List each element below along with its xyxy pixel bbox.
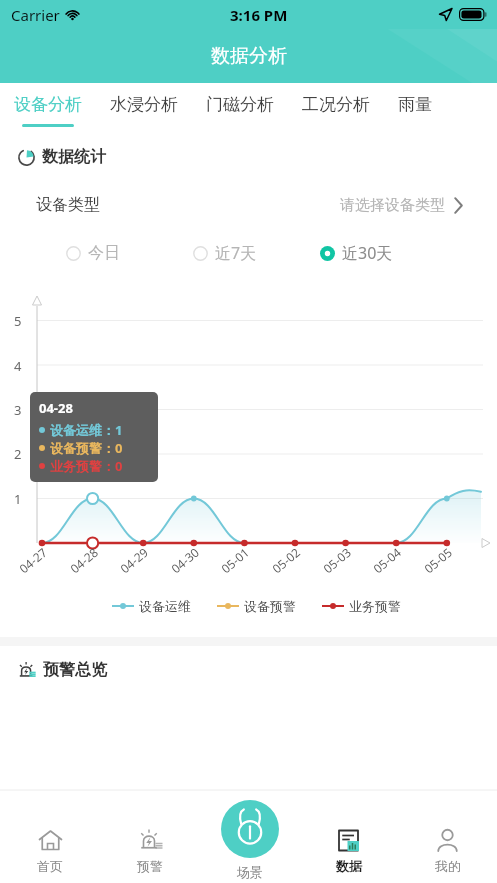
staticText: 首页 (37, 858, 63, 874)
staticText: 设备分析 (14, 94, 82, 115)
button[interactable]: 我的 (398, 790, 497, 883)
staticText: 预警 (137, 858, 163, 874)
staticText: 数据 (336, 858, 362, 874)
button[interactable]: 近7天 (193, 231, 320, 275)
staticText: 4 (14, 357, 22, 375)
staticText: 04-28 (67, 544, 101, 576)
staticText: 雨量 (398, 94, 432, 115)
staticText: 今日 (88, 243, 120, 263)
staticText: 业务预警 (349, 598, 401, 614)
staticText: 工况分析 (302, 94, 370, 115)
staticText: 05-04 (370, 544, 404, 576)
staticText: 我的 (435, 858, 461, 874)
button[interactable]: 今日 (66, 231, 193, 275)
staticText: 3 (14, 401, 22, 419)
button[interactable]: 近30天 (320, 231, 447, 275)
staticText: 数据统计 (42, 147, 106, 167)
staticText: 设备类型 (36, 195, 100, 215)
staticText: 设备预警 (244, 598, 296, 614)
button[interactable]: 数据 (299, 790, 398, 883)
button[interactable]: 首页 (0, 790, 100, 883)
button[interactable]: 设备类型 (20, 179, 477, 231)
staticText: 05-01 (218, 544, 252, 576)
staticText: 近7天 (215, 242, 257, 264)
button[interactable]: 场景 (200, 790, 299, 883)
staticText: 请选择设备类型 (340, 196, 445, 215)
button[interactable]: 门磁分析 (206, 83, 274, 135)
staticText: 04-27 (16, 544, 50, 576)
staticText: 05-05 (421, 544, 455, 576)
staticText: 05-03 (320, 544, 354, 576)
staticText: 预警总览 (43, 660, 107, 680)
button[interactable]: 预警 (100, 790, 200, 883)
staticText: 设备预警：0 (50, 439, 123, 457)
staticText: 门磁分析 (206, 94, 274, 115)
other: 场景 (221, 800, 279, 858)
staticText: 04-30 (168, 544, 202, 576)
button[interactable]: 工况分析 (302, 83, 370, 135)
button[interactable]: 雨量 (398, 83, 432, 135)
staticText: 04-28 (39, 399, 73, 417)
button[interactable]: 设备分析 (14, 83, 82, 135)
staticText: 近30天 (342, 242, 393, 264)
staticText: 3:16 PM (230, 5, 288, 25)
staticText: 05-02 (269, 544, 303, 576)
staticText: 5 (14, 312, 22, 330)
staticText: Carrier (11, 5, 60, 25)
staticText: 场景 (237, 864, 263, 880)
staticText: 水浸分析 (110, 94, 178, 115)
staticText: 数据分析 (211, 44, 287, 68)
staticText: 业务预警：0 (50, 457, 123, 475)
staticText: 2 (14, 445, 22, 463)
button[interactable]: 水浸分析 (110, 83, 178, 135)
staticText: 设备运维：1 (50, 421, 123, 439)
staticText: 04-29 (117, 544, 151, 576)
staticText: 设备运维 (139, 598, 191, 614)
staticText: 1 (14, 490, 22, 508)
